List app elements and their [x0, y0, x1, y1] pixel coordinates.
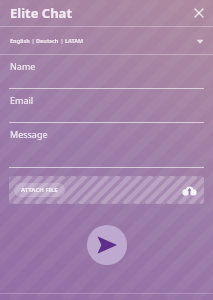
button[interactable]: Deutsch: [36, 37, 59, 44]
staticText: Elite Chat: [10, 4, 73, 22]
staticText: Name: [10, 60, 36, 72]
staticText: |: [59, 37, 65, 44]
button[interactable]: Message: [0, 123, 213, 168]
button[interactable]: Email: [0, 89, 213, 123]
staticText: Email: [10, 94, 34, 106]
button[interactable]: Name: [0, 55, 213, 89]
staticText: Message: [10, 128, 48, 140]
staticText: |: [30, 37, 36, 44]
button[interactable]: ATTACH FILE: [9, 176, 204, 204]
button[interactable]: English: [10, 37, 30, 44]
staticText: Deutsch: [36, 37, 59, 44]
button[interactable]: Upload file: [182, 183, 197, 198]
button[interactable]: Close: [191, 5, 207, 21]
staticText: ATTACH FILE: [21, 186, 58, 194]
staticText: English: [10, 37, 30, 44]
staticText: LATAM: [65, 37, 84, 44]
button[interactable]: Select language: [195, 36, 205, 46]
button[interactable]: Send: [87, 225, 127, 265]
button[interactable]: LATAM: [65, 37, 84, 44]
button[interactable]: ATTACH FILE: [14, 183, 65, 197]
